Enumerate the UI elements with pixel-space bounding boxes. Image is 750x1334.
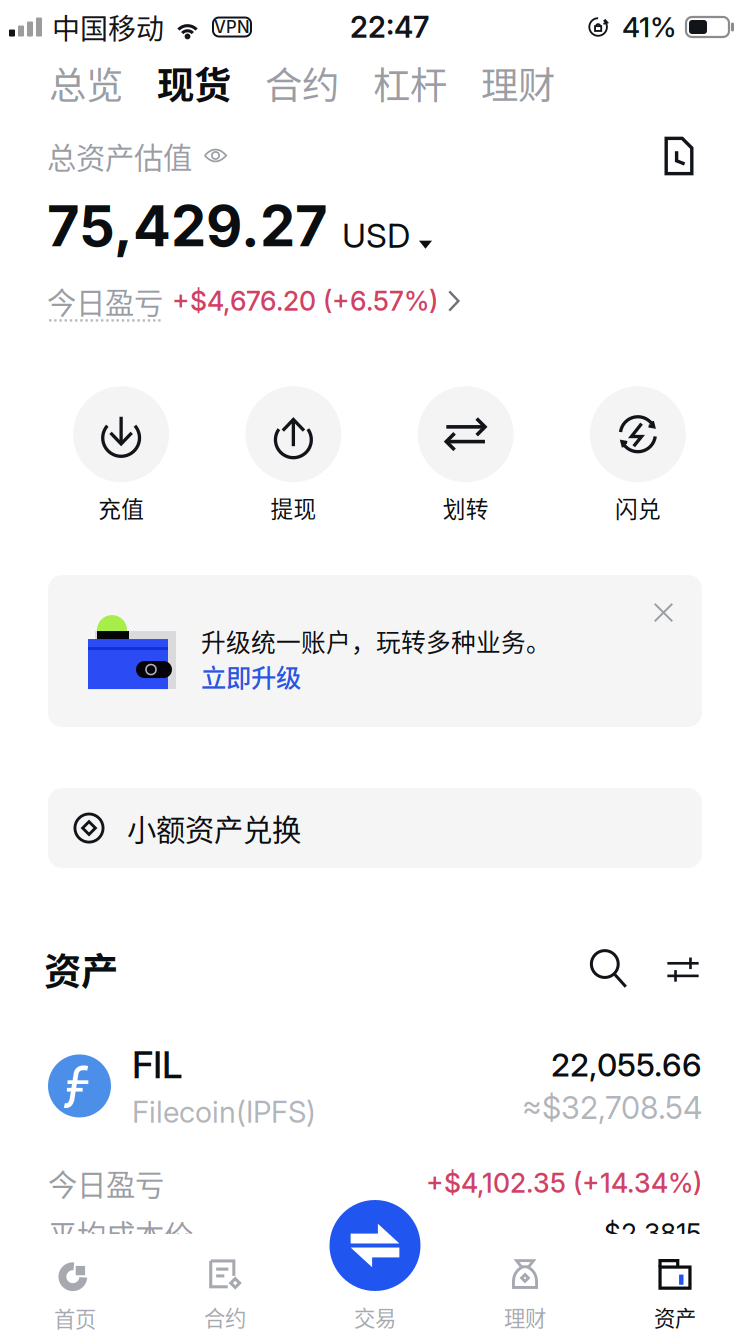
staticText: 22:47 <box>350 9 429 45</box>
button[interactable]: 提现 <box>207 386 379 524</box>
staticText: 杠杆 <box>373 56 447 110</box>
staticText: 首页 <box>54 1303 96 1333</box>
staticText: 总资产估值 <box>47 135 192 177</box>
staticText: 划转 <box>443 491 489 524</box>
staticText: 理财 <box>481 56 555 110</box>
button[interactable]: 交易 <box>300 1234 450 1334</box>
button[interactable]: 闪兑 <box>552 386 724 524</box>
button[interactable]: 搜索 <box>582 942 636 996</box>
button[interactable]: 总览 <box>32 54 140 112</box>
staticText: FIL <box>132 1042 182 1087</box>
staticText: 小额资产兑换 <box>127 807 301 849</box>
staticText: USD <box>342 215 410 256</box>
staticText: 今日盈亏 <box>48 1162 164 1204</box>
staticText: +$4,676.20 (+6.57%) <box>172 285 438 317</box>
button[interactable]: 资产 <box>600 1234 750 1334</box>
button[interactable]: FIL <box>0 996 750 1255</box>
staticText: 提现 <box>270 491 316 524</box>
staticText: 交易 <box>354 1302 396 1332</box>
button[interactable]: 小额资产兑换 <box>0 727 750 868</box>
staticText: 闪兑 <box>615 491 661 524</box>
staticText: 总览 <box>49 56 123 110</box>
staticText: 今日盈亏 <box>47 280 163 322</box>
button[interactable]: 筛选 <box>660 946 706 992</box>
staticText: ≈$32,708.54 <box>522 1089 702 1126</box>
staticText: 立即升级 <box>201 658 301 694</box>
staticText: Filecoin(IPFS) <box>132 1094 316 1130</box>
staticText: 现货 <box>157 56 231 110</box>
button[interactable]: 交易 <box>329 1200 420 1291</box>
staticText: 资产 <box>44 942 118 996</box>
button[interactable]: 关闭 <box>642 591 685 634</box>
staticText: 中国移动 <box>52 7 164 47</box>
staticText: +$4,102.35 (+14.34%) <box>426 1167 702 1199</box>
button[interactable]: 理财 <box>464 54 572 112</box>
button[interactable]: 充值 <box>35 386 207 524</box>
button[interactable]: 划转 <box>379 386 552 524</box>
staticText: 平均成本价 <box>48 1212 193 1255</box>
staticText: 41% <box>622 10 677 44</box>
button[interactable]: 立即升级 <box>201 659 301 694</box>
staticText: 理财 <box>504 1302 546 1332</box>
staticText: 合约 <box>204 1302 246 1332</box>
button[interactable]: 首页 <box>0 1234 150 1334</box>
button[interactable]: 交易记录 <box>655 132 703 180</box>
button[interactable]: 现货 <box>140 54 248 112</box>
button[interactable]: 杠杆 <box>356 54 464 112</box>
staticText: 资产 <box>654 1302 696 1332</box>
staticText: 22,055.66 <box>551 1045 702 1084</box>
staticText: 充值 <box>98 491 144 524</box>
staticText: $2.3815 <box>604 1217 702 1250</box>
button[interactable]: 合约 <box>150 1234 300 1334</box>
staticText: 合约 <box>265 56 339 110</box>
staticText: 75,429.27 <box>47 192 328 260</box>
staticText: VPN <box>214 17 250 37</box>
button[interactable]: 理财 <box>450 1234 600 1334</box>
staticText: 升级统一账户，玩转多种业务。 <box>201 623 551 659</box>
button[interactable]: 合约 <box>248 54 356 112</box>
